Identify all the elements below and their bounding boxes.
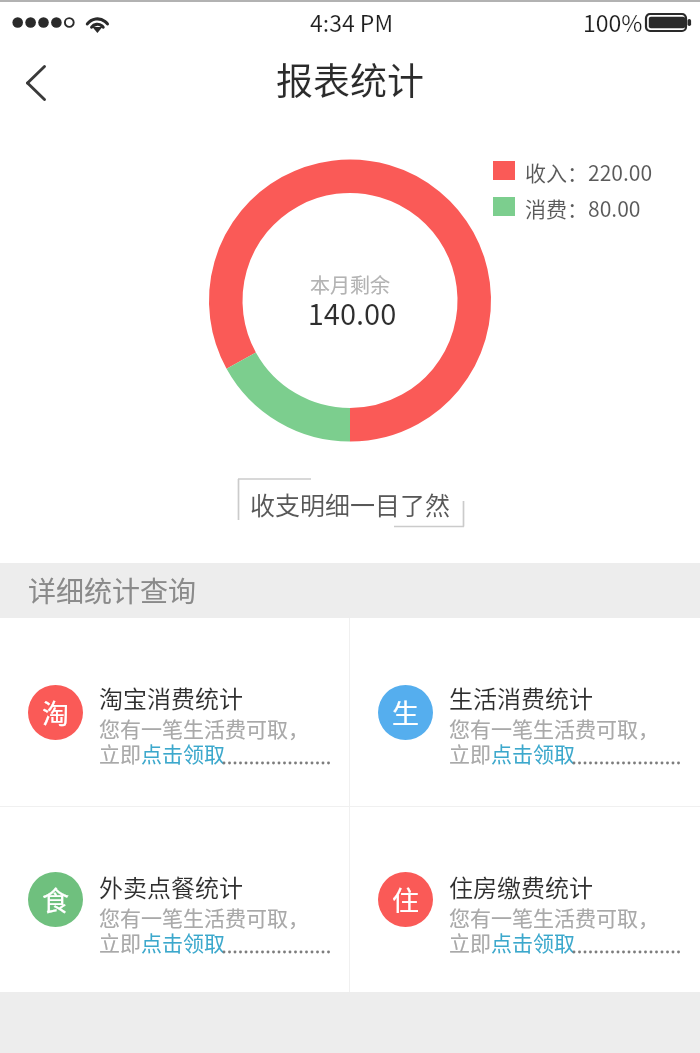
button[interactable]: 食: [0, 807, 349, 992]
staticText: 立即点击领取: [99, 927, 225, 957]
staticText: 报表统计: [0, 52, 700, 106]
staticText: 食: [42, 880, 69, 919]
staticText: 您有一笔生活费可取，: [449, 713, 659, 743]
staticText: 立即点击领取: [99, 738, 225, 768]
staticText: 您有一笔生活费可取，: [99, 713, 309, 743]
staticText: 立即点击领取: [449, 738, 575, 768]
staticText: 外卖点餐统计: [99, 869, 243, 904]
button[interactable]: 生: [350, 618, 700, 806]
staticText: 您有一笔生活费可取，: [449, 902, 659, 932]
staticText: 消费：80.00: [525, 193, 641, 223]
staticText: 您有一笔生活费可取，: [99, 902, 309, 932]
staticText: 100%: [583, 5, 643, 38]
button[interactable]: 立即点击领取: [449, 738, 575, 768]
staticText: 淘宝消费统计: [99, 680, 243, 715]
button[interactable]: 立即点击领取: [99, 738, 225, 768]
button[interactable]: 住: [350, 807, 700, 992]
staticText: 收支明细一目了然: [0, 486, 700, 522]
staticText: 详细统计查询: [28, 570, 197, 611]
staticText: 4:34 PM: [310, 5, 394, 38]
staticText: 生活消费统计: [449, 680, 593, 715]
staticText: 住: [392, 880, 419, 919]
staticText: 生: [392, 693, 419, 732]
staticText: 本月剩余: [0, 270, 700, 299]
button[interactable]: Back: [0, 48, 80, 116]
staticText: 淘: [42, 693, 69, 732]
staticText: 140.00: [2, 291, 700, 333]
staticText: 住房缴费统计: [449, 869, 593, 904]
staticText: 收入：220.00: [525, 157, 653, 187]
button[interactable]: 淘: [0, 618, 349, 806]
button[interactable]: 立即点击领取: [449, 927, 575, 957]
staticText: 立即点击领取: [449, 927, 575, 957]
button[interactable]: 立即点击领取: [99, 927, 225, 957]
